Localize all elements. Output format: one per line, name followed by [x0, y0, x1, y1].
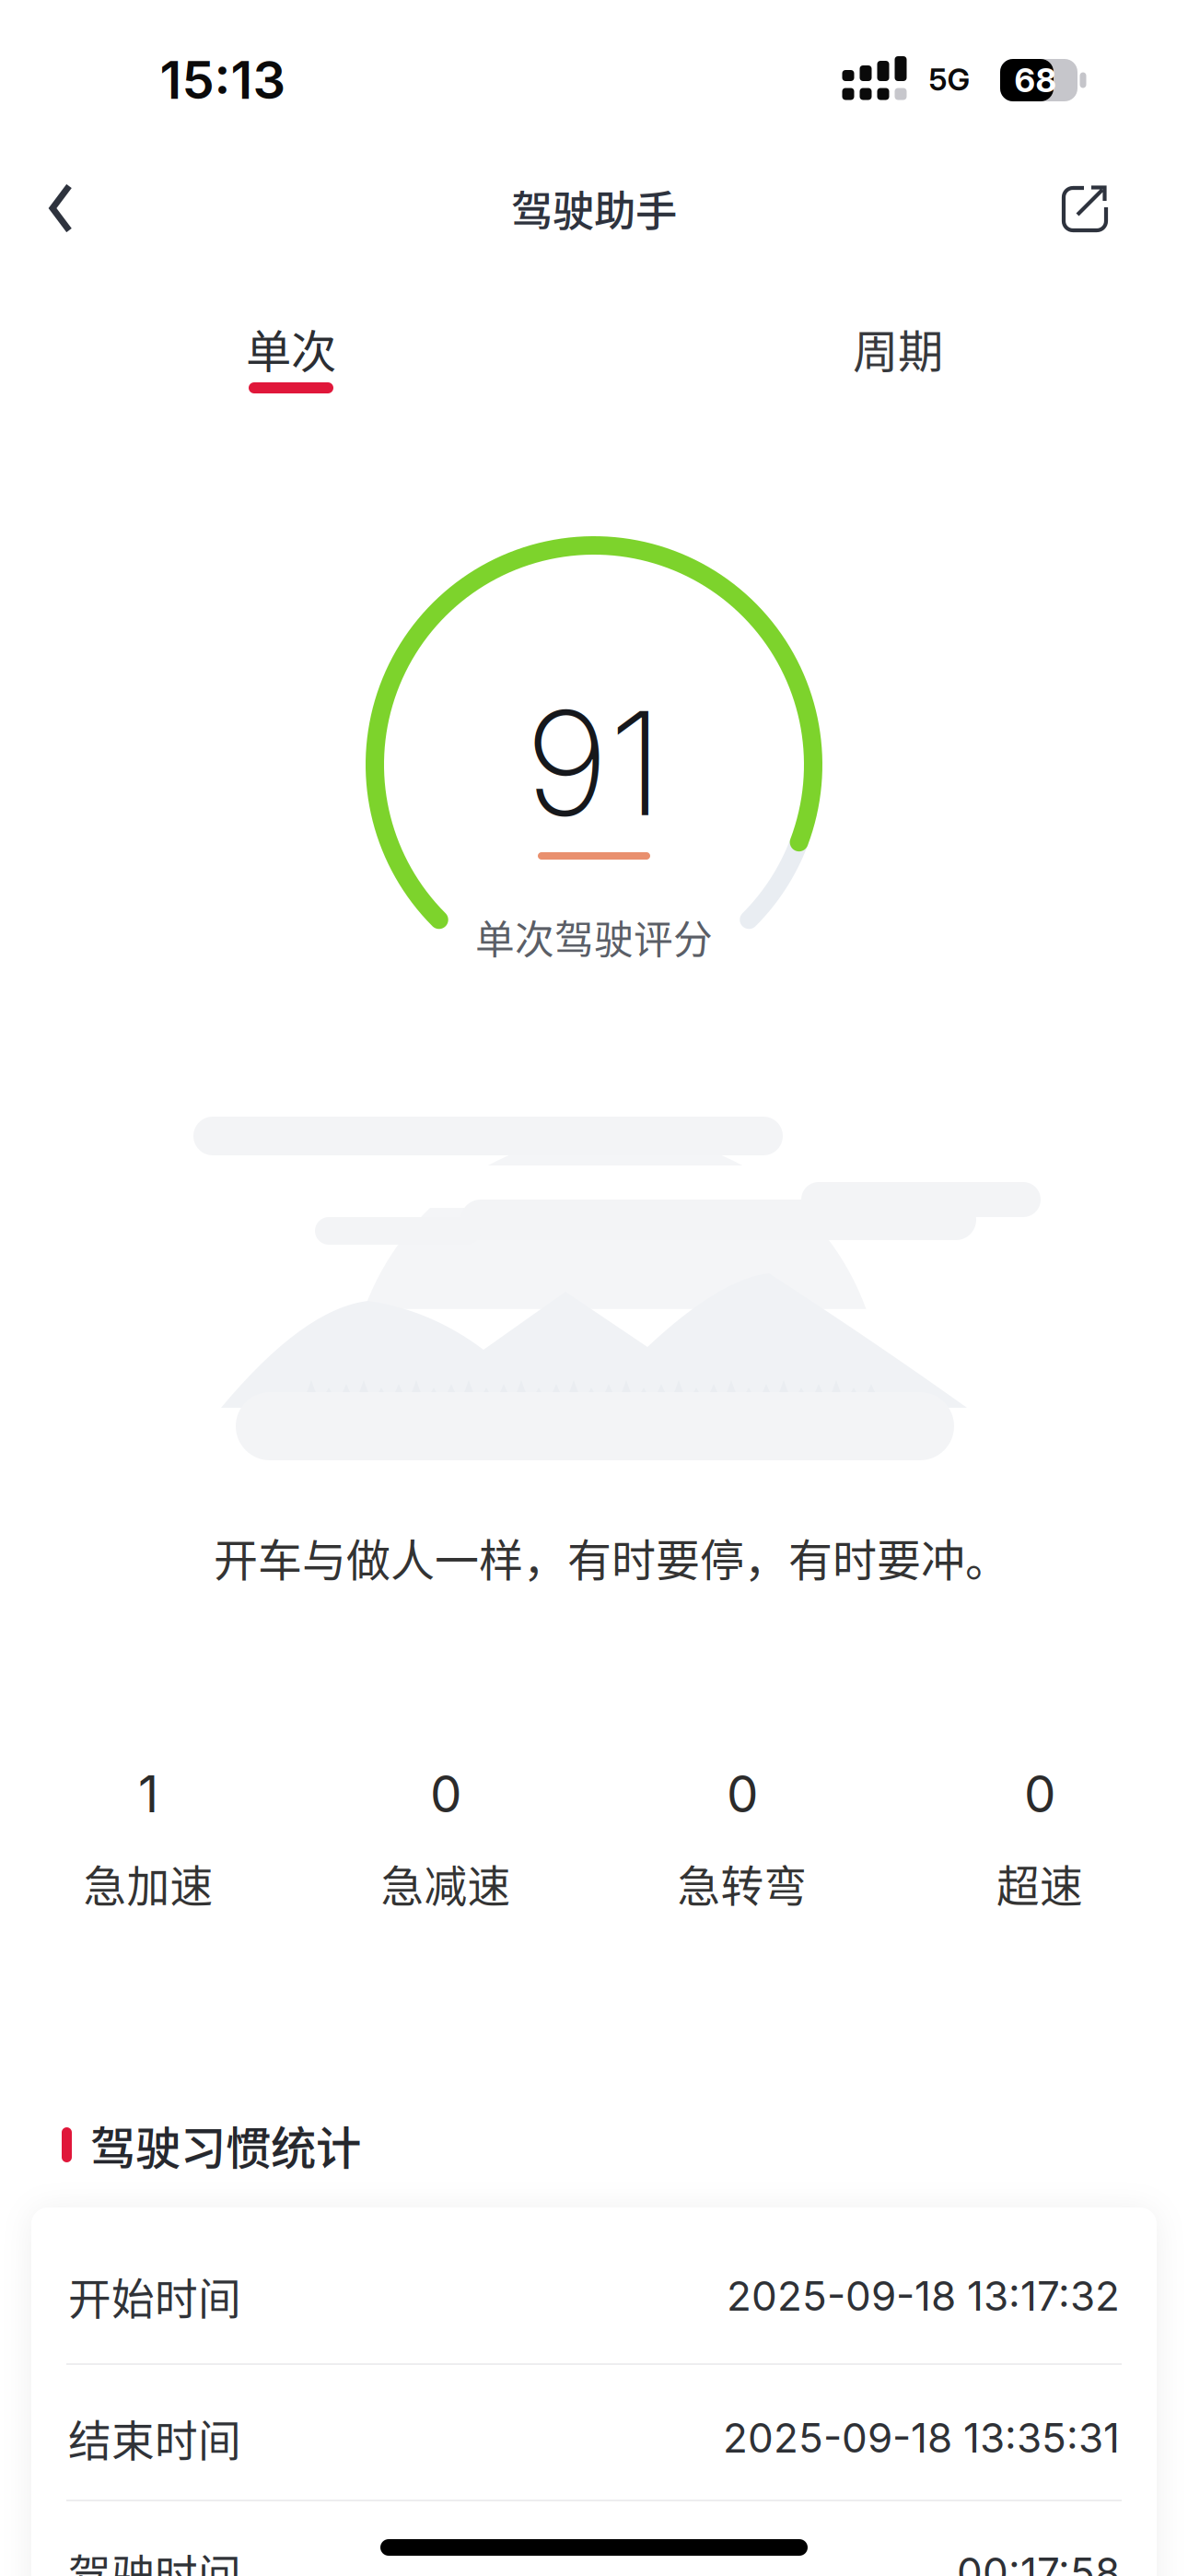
button[interactable]: Back: [24, 171, 98, 245]
staticText: 单次: [246, 315, 336, 381]
staticText: 驾驶时间: [68, 2541, 241, 2576]
staticText: 0: [430, 1763, 461, 1824]
staticText: 驾驶习惯统计: [90, 2112, 361, 2178]
staticText: 开始时间: [68, 2265, 241, 2327]
staticText: 91: [525, 676, 663, 850]
staticText: 00:17:58: [957, 2548, 1120, 2576]
staticText: 15:13: [160, 49, 286, 111]
button[interactable]: 单次: [208, 317, 374, 419]
staticText: 0: [727, 1763, 758, 1824]
staticText: 超速: [996, 1852, 1083, 1914]
staticText: 2025-09-18 13:17:32: [727, 2271, 1120, 2320]
staticText: 驾驶助手: [511, 178, 677, 238]
staticText: 2025-09-18 13:35:31: [723, 2413, 1120, 2462]
button[interactable]: 周期: [815, 317, 981, 419]
staticText: 1: [138, 1763, 158, 1824]
staticText: 开车与做人一样，有时要停，有时要冲。: [214, 1525, 1009, 1589]
staticText: 急加速: [83, 1852, 213, 1914]
staticText: 68: [1014, 60, 1056, 100]
staticText: 单次驾驶评分: [475, 909, 713, 965]
staticText: 结束时间: [68, 2407, 241, 2469]
staticText: 周期: [853, 315, 943, 381]
staticText: 0: [1024, 1763, 1055, 1824]
staticText: 急减速: [381, 1852, 511, 1914]
staticText: 急转弯: [677, 1852, 807, 1914]
button[interactable]: Share: [1053, 177, 1117, 241]
staticText: 5G: [929, 61, 970, 98]
